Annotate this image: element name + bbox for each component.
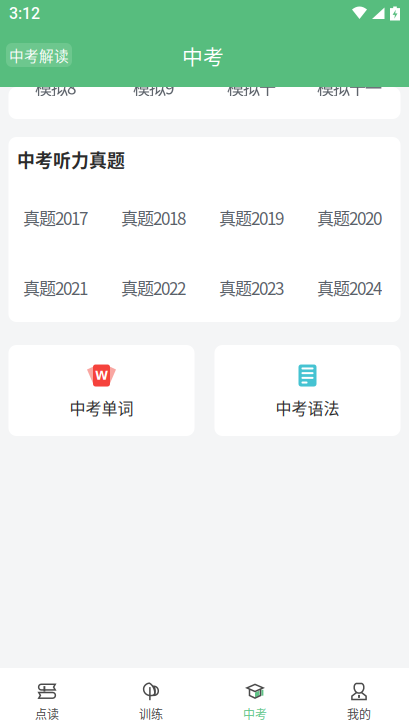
button[interactable]: 中考 (203, 668, 307, 728)
staticText: 中考语法 (275, 396, 339, 419)
button[interactable]: 中考解读 (6, 43, 72, 67)
button[interactable]: 模拟十 (204, 52, 302, 122)
staticText: 模拟十 (227, 75, 276, 99)
staticText: 真题2017 (23, 205, 88, 230)
button[interactable]: 真题2017 (8, 182, 106, 252)
staticText: 真题2022 (121, 275, 186, 300)
staticText: 中考 (182, 41, 224, 71)
button[interactable]: W (8, 345, 194, 436)
staticText: 3:12 (9, 4, 40, 23)
staticText: 模拟8 (35, 75, 76, 99)
staticText: 真题2020 (317, 205, 382, 230)
staticText: 真题2023 (219, 275, 284, 300)
staticText: 真题2024 (317, 275, 382, 300)
button[interactable]: 中考语法 (214, 345, 400, 436)
staticText: 模拟9 (133, 75, 174, 99)
button[interactable]: 我的 (307, 668, 409, 728)
staticText: W (95, 368, 108, 382)
staticText: 中考解读 (9, 44, 69, 66)
staticText: 点读 (35, 705, 59, 722)
staticText: 中考单词 (69, 396, 133, 419)
button[interactable]: 真题2024 (302, 252, 400, 322)
staticText: 真题2019 (219, 205, 284, 230)
staticText: 真题2021 (23, 275, 88, 300)
staticText: 中考听力真题 (17, 147, 125, 172)
button[interactable]: 训练 (99, 668, 203, 728)
button[interactable]: 真题2023 (204, 252, 302, 322)
staticText: 我的 (347, 705, 371, 722)
button[interactable]: 模拟十一 (302, 52, 400, 122)
button[interactable]: 真题2019 (204, 182, 302, 252)
staticText: 模拟十一 (317, 75, 382, 99)
button[interactable]: 真题2020 (302, 182, 400, 252)
staticText: 真题2018 (121, 205, 186, 230)
button[interactable]: 真题2018 (106, 182, 204, 252)
button[interactable]: 模拟9 (106, 52, 204, 122)
button[interactable]: 模拟8 (8, 52, 106, 122)
button[interactable]: 点读 (0, 668, 99, 728)
button[interactable]: 真题2022 (106, 252, 204, 322)
staticText: 训练 (139, 705, 163, 722)
button[interactable]: 真题2021 (8, 252, 106, 322)
staticText: 中考 (243, 705, 267, 722)
